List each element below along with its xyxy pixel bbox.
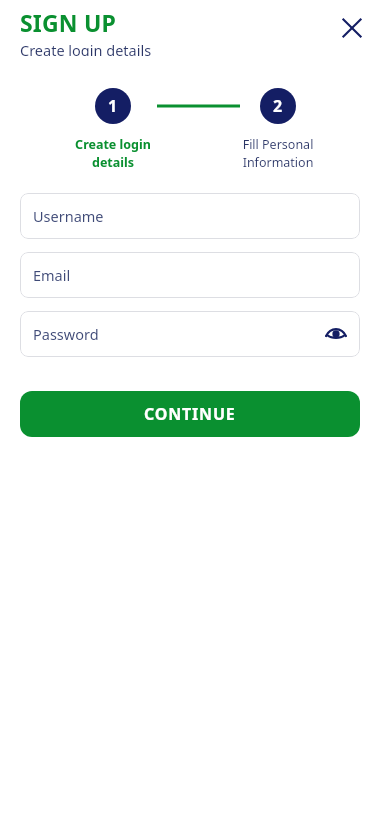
staticText: Create login details xyxy=(63,136,163,171)
staticText: CONTINUE xyxy=(144,403,236,425)
button[interactable]: Email xyxy=(20,252,360,298)
staticText: Username xyxy=(33,206,104,226)
button[interactable]: CONTINUE xyxy=(20,391,360,437)
staticText: Create login details xyxy=(20,40,152,56)
staticText: SIGN UP xyxy=(20,7,117,38)
button[interactable]: Username xyxy=(20,193,360,239)
button[interactable]: 2 xyxy=(260,88,296,124)
staticText: Fill Personal Information xyxy=(228,136,328,171)
button[interactable]: Close xyxy=(332,8,372,48)
staticText: 2 xyxy=(273,95,283,117)
button[interactable]: Password xyxy=(20,311,360,357)
button[interactable]: Show password xyxy=(318,316,354,352)
staticText: 1 xyxy=(108,95,118,117)
staticText: Password xyxy=(33,324,99,344)
staticText: Email xyxy=(33,265,71,285)
button[interactable]: 1 xyxy=(95,88,131,124)
